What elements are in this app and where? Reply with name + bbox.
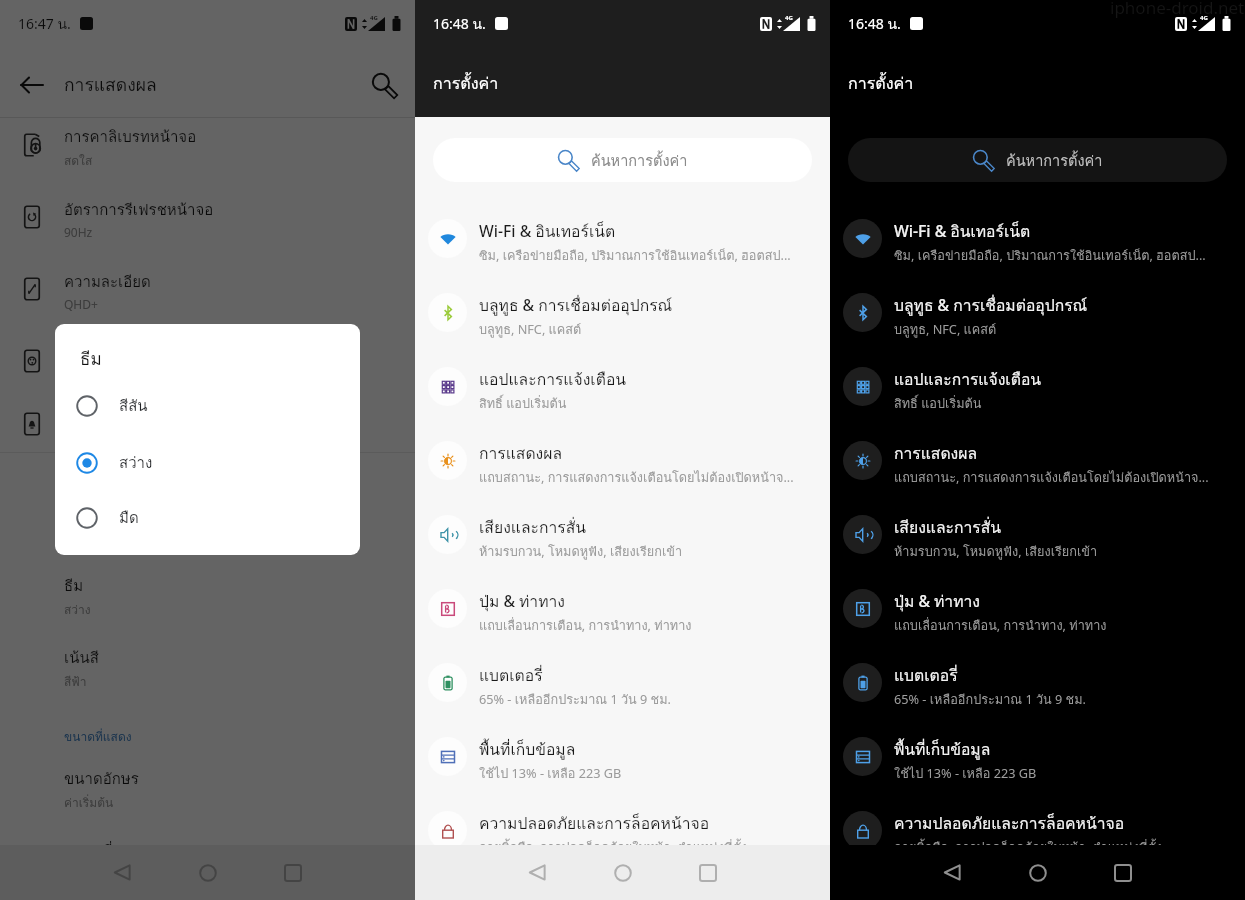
button[interactable]: เสียงและการสั่น	[415, 497, 830, 571]
staticText: แอปและการแจ้งเตือน	[894, 367, 1042, 392]
staticText: ค้นหาการตั้งค่า	[1006, 149, 1103, 172]
button[interactable]: ปุ่ม & ท่าทาง	[415, 571, 830, 645]
button[interactable]: Search	[353, 50, 415, 120]
button[interactable]: ธีม	[0, 566, 415, 622]
button[interactable]: ความละเอียด	[0, 261, 415, 317]
button[interactable]: ความปลอดภัยและการล็อคหน้าจอ	[830, 793, 1245, 867]
staticText: ปุ่ม & ท่าทาง	[479, 589, 565, 614]
staticText: ขนาดที่แสดง	[64, 727, 132, 746]
staticText: การแสดงผล	[64, 71, 157, 99]
staticText: ขนาดที่แสดง	[64, 839, 149, 863]
staticText: มืด	[119, 506, 139, 530]
button[interactable]: Back	[910, 845, 995, 900]
button[interactable]: Recents	[1080, 845, 1165, 900]
staticText: QHD+	[64, 296, 98, 312]
button[interactable]: Back	[0, 50, 64, 120]
button[interactable]: Home	[995, 845, 1080, 900]
staticText: 4G	[785, 14, 793, 22]
button[interactable]: เน้นสี	[0, 638, 415, 694]
staticText: ซิม, เครือข่ายมือถือ, ปริมาณการใช้อินเทอ…	[894, 245, 1206, 265]
staticText: 4G	[1200, 14, 1208, 22]
button[interactable]: ค้นหาการตั้งค่า	[848, 138, 1227, 182]
button[interactable]: Recents	[250, 845, 335, 900]
button[interactable]: การแสดงผล	[415, 423, 830, 497]
button[interactable]: แอปและการแจ้งเตือน	[415, 349, 830, 423]
staticText: สีฟ้า	[64, 672, 87, 691]
staticText: แถบสถานะ, การแสดงการแจ้งเตือนโดยไม่ต้องเ…	[479, 467, 794, 487]
button[interactable]: Back	[495, 845, 580, 900]
staticText: Wi-Fi & อินเทอร์เน็ต	[894, 219, 1031, 244]
staticText: ห้ามรบกวน, โหมดหูฟัง, เสียงเรียกเข้า	[479, 541, 683, 561]
staticText: ความปลอดภัยและการล็อคหน้าจอ	[894, 811, 1125, 836]
button[interactable]: มืด	[55, 492, 360, 544]
button[interactable]: Home	[580, 845, 665, 900]
staticText: 65% - เหลืออีกประมาณ 1 วัน 9 ชม.	[479, 689, 671, 709]
button[interactable]: อัตราการรีเฟรชหน้าจอ	[0, 189, 415, 245]
button[interactable]: สีสัน	[55, 380, 360, 432]
staticText: 16:48 น.	[848, 13, 901, 35]
button[interactable]: การแสดงผล	[830, 423, 1245, 497]
staticText: แอปและการแจ้งเตือน	[479, 367, 627, 392]
staticText: 16:47 น.	[18, 13, 71, 35]
staticText: ความปลอดภัยและการล็อคหน้าจอ	[479, 811, 710, 836]
staticText: บลูทูธ & การเชื่อมต่ออุปกรณ์	[479, 293, 673, 318]
staticText: ซิม, เครือข่ายมือถือ, ปริมาณการใช้อินเทอ…	[479, 245, 791, 265]
staticText: ค้นหาการตั้งค่า	[591, 149, 688, 172]
button[interactable]: แอปและการแจ้งเตือน	[830, 349, 1245, 423]
button[interactable]: Wi-Fi & อินเทอร์เน็ต	[415, 201, 830, 275]
staticText: ธีม	[64, 574, 84, 598]
staticText: 65% - เหลืออีกประมาณ 1 วัน 9 ชม.	[894, 689, 1086, 709]
staticText: สว่าง	[64, 600, 91, 619]
staticText: ความละเอียด	[64, 270, 151, 294]
button[interactable]: ปุ่ม & ท่าทาง	[830, 571, 1245, 645]
button[interactable]: บลูทูธ & การเชื่อมต่ออุปกรณ์	[830, 275, 1245, 349]
staticText: บลูทูธ, NFC, แคสต์	[894, 319, 997, 339]
staticText: การตั้งค่า	[848, 71, 914, 96]
button[interactable]: Recents	[665, 845, 750, 900]
staticText: ห้ามรบกวน, โหมดหูฟัง, เสียงเรียกเข้า	[894, 541, 1098, 561]
button[interactable]: แบตเตอรี่	[830, 645, 1245, 719]
button[interactable]: การคาลิเบรทหน้าจอ	[0, 117, 415, 173]
staticText: ใช้ไป 13% - เหลือ 223 GB	[894, 763, 1037, 783]
staticText: ขนาดอักษร	[64, 767, 139, 791]
button[interactable]: Home	[165, 845, 250, 900]
staticText: iphone-droid.net	[1110, 0, 1245, 19]
staticText: บลูทูธ, NFC, แคสต์	[479, 319, 582, 339]
staticText: สว่าง	[119, 451, 153, 475]
button[interactable]: ขนาดที่แสดง	[0, 831, 415, 887]
button[interactable]: แสงยามค่ำอัตโนมัติ	[0, 396, 415, 452]
staticText: สิทธิ์ แอปเริ่มต้น	[894, 393, 982, 413]
button[interactable]: ความปลอดภัยและการล็อคหน้าจอ	[415, 793, 830, 867]
button[interactable]: สไตล์	[0, 490, 415, 546]
staticText: บลูทูธ & การเชื่อมต่ออุปกรณ์	[894, 293, 1088, 318]
staticText: การตั้งค่า	[433, 71, 499, 96]
staticText: อัตราการรีเฟรชหน้าจอ	[64, 198, 214, 222]
staticText: การแสดงผล	[479, 441, 563, 466]
button[interactable]: พื้นที่เก็บข้อมูล	[830, 719, 1245, 793]
staticText: 90Hz	[64, 224, 93, 240]
button[interactable]: เสียงและการสั่น	[830, 497, 1245, 571]
button[interactable]: สว่าง	[55, 437, 360, 489]
staticText: แถบเลื่อนการเตือน, การนำทาง, ท่าทาง	[479, 615, 692, 635]
button[interactable]: ขนาดอักษร	[0, 759, 415, 815]
button[interactable]: บลูทูธ & การเชื่อมต่ออุปกรณ์	[415, 275, 830, 349]
staticText: พื้นที่เก็บข้อมูล	[479, 737, 576, 762]
button[interactable]: แบตเตอรี่	[415, 645, 830, 719]
staticText: ลายนิ้วมือ, การปลดล็อคด้วยใบหน้า, ตำแหน่…	[479, 837, 747, 857]
staticText: ใช้ไป 13% - เหลือ 223 GB	[479, 763, 622, 783]
staticText: แบตเตอรี่	[894, 663, 958, 688]
staticText: ค่าเริ่มต้น	[64, 524, 114, 543]
button[interactable]: Back	[80, 845, 165, 900]
button[interactable]: ค้นหาการตั้งค่า	[433, 138, 812, 182]
staticText: สีสัน	[119, 394, 148, 418]
button[interactable]: พื้นที่เก็บข้อมูล	[415, 719, 830, 793]
staticText: การแสดงผล	[894, 441, 978, 466]
staticText: 16:48 น.	[433, 13, 486, 35]
staticText: Wi-Fi & อินเทอร์เน็ต	[479, 219, 616, 244]
staticText: ลายนิ้วมือ, การปลดล็อคด้วยใบหน้า, ตำแหน่…	[894, 837, 1162, 857]
button[interactable]: Wi-Fi & อินเทอร์เน็ต	[830, 201, 1245, 275]
staticText: ปุ่ม & ท่าทาง	[894, 589, 980, 614]
button[interactable]: เน้นภาพ	[0, 333, 415, 389]
